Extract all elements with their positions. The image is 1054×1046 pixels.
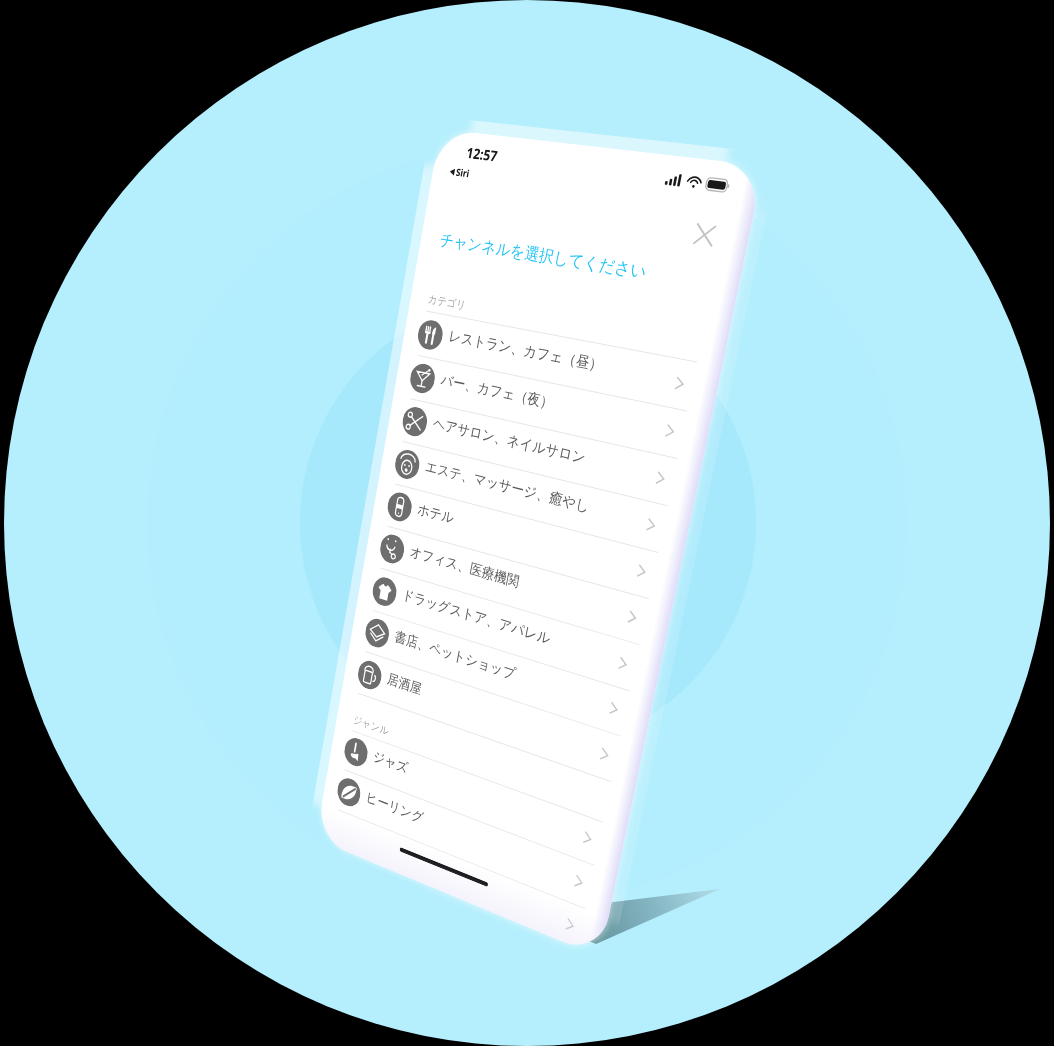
staticText: レストラン、カフェ（昼）	[447, 327, 604, 376]
button[interactable]	[401, 308, 695, 410]
button[interactable]	[357, 564, 638, 690]
button[interactable]	[329, 723, 602, 864]
button[interactable]	[371, 479, 656, 598]
staticText: 12:57	[465, 143, 499, 165]
staticText: ホテル	[416, 500, 456, 528]
staticText: チャンネルを選択してください	[438, 229, 649, 283]
staticText: Siri	[455, 165, 471, 180]
button[interactable]: Close	[685, 215, 724, 255]
staticText: バー、カフェ（夜）	[439, 370, 555, 413]
staticText: オフィス、医療機関	[409, 543, 521, 592]
button[interactable]	[349, 605, 628, 735]
button[interactable]	[364, 521, 647, 644]
staticText: ドラッグストア、アパレル	[401, 586, 552, 648]
staticText: エステ、マッサージ、癒やし	[424, 457, 591, 517]
button[interactable]	[393, 351, 685, 458]
staticText: 書店、ペットショップ	[393, 627, 517, 684]
staticText: ヒーリング	[365, 788, 425, 827]
button[interactable]	[342, 647, 619, 781]
button[interactable]	[379, 437, 666, 551]
staticText: ジャンル	[353, 712, 391, 738]
staticText: 居酒屋	[386, 670, 423, 699]
staticText: ヘアサロン、ネイルサロン	[432, 414, 587, 468]
staticText: カテゴリ	[427, 291, 468, 312]
button[interactable]	[322, 763, 593, 908]
staticText: ジャズ	[372, 747, 410, 777]
button[interactable]	[386, 394, 676, 505]
